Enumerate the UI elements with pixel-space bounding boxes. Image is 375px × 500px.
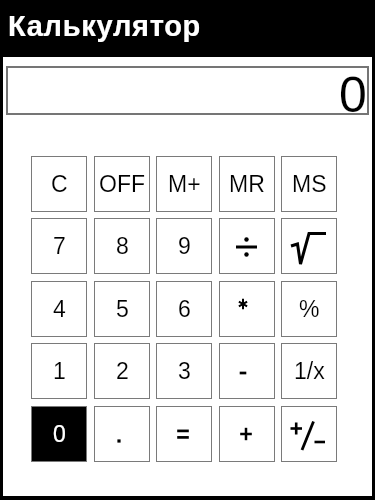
button[interactable] [94, 406, 150, 462]
staticText: M+ [168, 171, 201, 197]
staticText: 9 [178, 233, 191, 259]
staticText: 1 [53, 358, 66, 384]
button[interactable]: 1/x [281, 343, 337, 399]
staticText: MR [229, 171, 265, 197]
button[interactable]: M+ [156, 156, 212, 212]
button[interactable]: 3 [156, 343, 212, 399]
button[interactable]: 0 [6, 66, 369, 115]
button[interactable]: OFF [94, 156, 150, 212]
button[interactable]: MR [219, 156, 275, 212]
button[interactable] [281, 406, 337, 462]
staticText: 7 [53, 233, 66, 259]
button[interactable] [219, 218, 275, 274]
button[interactable] [156, 406, 212, 462]
button[interactable] [219, 406, 275, 462]
staticText: OFF [99, 171, 145, 197]
button[interactable]: 7 [31, 218, 87, 274]
staticText: 2 [116, 358, 129, 384]
button[interactable]: 0 [31, 406, 87, 462]
button[interactable]: 4 [31, 281, 87, 337]
button[interactable]: 8 [94, 218, 150, 274]
staticText: Калькулятор [8, 10, 201, 42]
button[interactable]: 9 [156, 218, 212, 274]
staticText: 1/x [294, 358, 325, 384]
button[interactable]: C [31, 156, 87, 212]
button[interactable]: 2 [94, 343, 150, 399]
button[interactable] [219, 343, 275, 399]
staticText: % [299, 296, 320, 322]
button[interactable]: 5 [94, 281, 150, 337]
staticText: 6 [178, 296, 191, 322]
button[interactable]: MS [281, 156, 337, 212]
staticText: C [51, 171, 68, 197]
button[interactable]: 1 [31, 343, 87, 399]
button[interactable]: % [281, 281, 337, 337]
staticText: 4 [53, 296, 66, 322]
staticText: 0 [53, 421, 66, 447]
staticText: 8 [116, 233, 129, 259]
staticText: 3 [178, 358, 191, 384]
button[interactable] [281, 218, 337, 274]
staticText: 5 [116, 296, 129, 322]
staticText: 0 [339, 67, 367, 116]
staticText: MS [292, 171, 327, 197]
button[interactable] [219, 281, 275, 337]
button[interactable]: 6 [156, 281, 212, 337]
